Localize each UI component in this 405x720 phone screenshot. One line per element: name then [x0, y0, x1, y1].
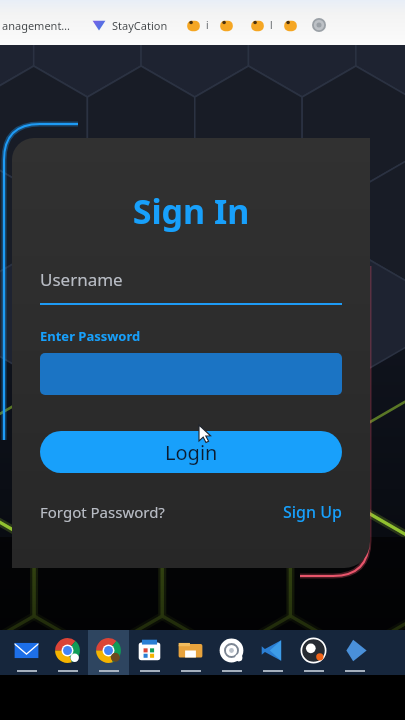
staticText: Login	[165, 439, 218, 466]
button[interactable]: Tab	[283, 18, 298, 33]
button[interactable]: Tab	[186, 18, 201, 33]
staticText: Enter Password	[40, 327, 141, 345]
staticText: Username	[40, 268, 123, 291]
button[interactable]: StayCation tab	[91, 17, 107, 33]
staticText: Sign In	[40, 188, 342, 234]
button[interactable]: Tab	[250, 18, 265, 33]
staticText: i	[206, 18, 209, 32]
staticText: l	[270, 18, 273, 32]
button[interactable]: App	[334, 630, 375, 675]
button[interactable]: Mail	[6, 630, 47, 675]
staticText: Forgot Password?	[40, 502, 165, 522]
button[interactable]: Media app	[211, 630, 252, 675]
button[interactable]: Forgot Password?	[40, 502, 165, 522]
button[interactable]: File Explorer	[170, 630, 211, 675]
button[interactable]: Tab	[312, 18, 326, 32]
button[interactable]: Login	[40, 431, 342, 473]
staticText: StayCation	[112, 18, 168, 33]
button[interactable]: Username	[40, 268, 342, 305]
button[interactable]: Visual Studio Code	[252, 630, 293, 675]
button[interactable]: Password field	[40, 353, 342, 395]
button[interactable]: OBS	[293, 630, 334, 675]
staticText: Sign Up	[283, 501, 342, 523]
button[interactable]: Chrome window	[88, 630, 129, 675]
button[interactable]: Sign Up	[283, 501, 342, 523]
staticText: anagement…	[2, 18, 71, 33]
button[interactable]: Tab	[219, 18, 234, 33]
button[interactable]: Microsoft Store	[129, 630, 170, 675]
button[interactable]: Chrome	[47, 630, 88, 675]
